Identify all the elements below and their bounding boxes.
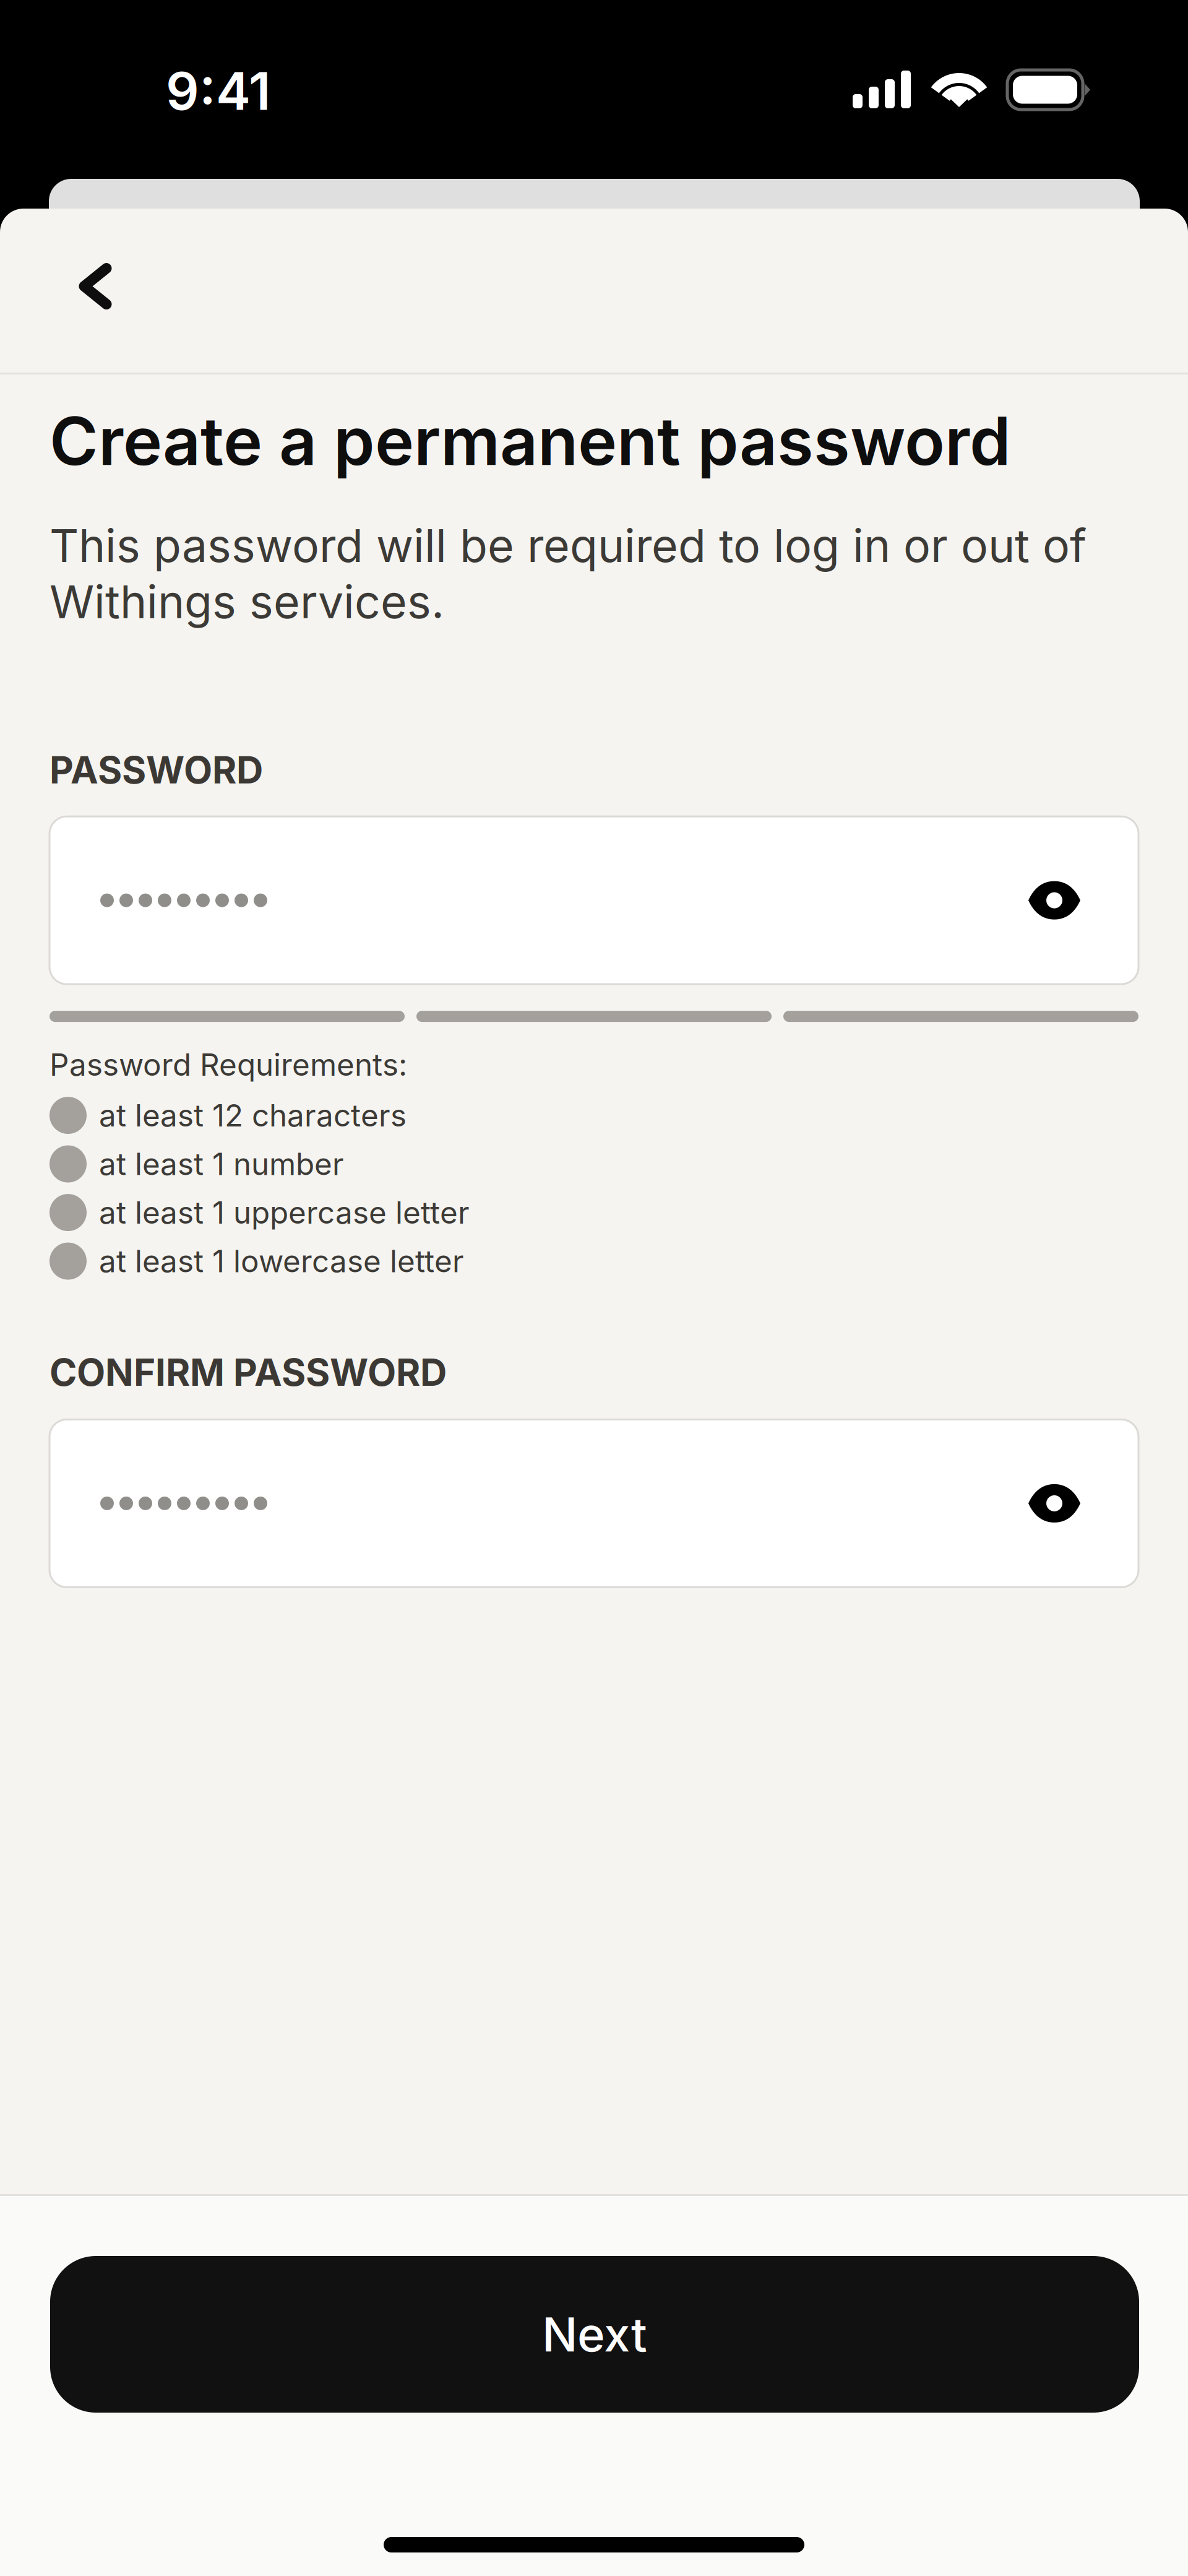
button[interactable]: Show password bbox=[1000, 846, 1109, 955]
staticText: at least 1 lowercase letter bbox=[99, 1243, 464, 1280]
staticText: PASSWORD bbox=[49, 747, 263, 792]
staticText: CONFIRM PASSWORD bbox=[49, 1350, 447, 1395]
staticText: Password Requirements: bbox=[49, 1046, 407, 1083]
staticText: This password will be required to log in… bbox=[49, 518, 1087, 573]
staticText: at least 12 characters bbox=[99, 1097, 407, 1134]
staticText: Create a permanent password bbox=[49, 401, 1011, 481]
staticText: at least 1 uppercase letter bbox=[99, 1194, 470, 1231]
staticText: at least 1 number bbox=[99, 1145, 344, 1182]
staticText: 9:41 bbox=[166, 59, 271, 122]
staticText: Next bbox=[542, 2306, 647, 2363]
staticText: Withings services. bbox=[49, 574, 444, 629]
button[interactable]: Next bbox=[50, 2256, 1139, 2413]
button[interactable]: Show password bbox=[1000, 1449, 1109, 1558]
button[interactable]: Back bbox=[46, 239, 145, 342]
